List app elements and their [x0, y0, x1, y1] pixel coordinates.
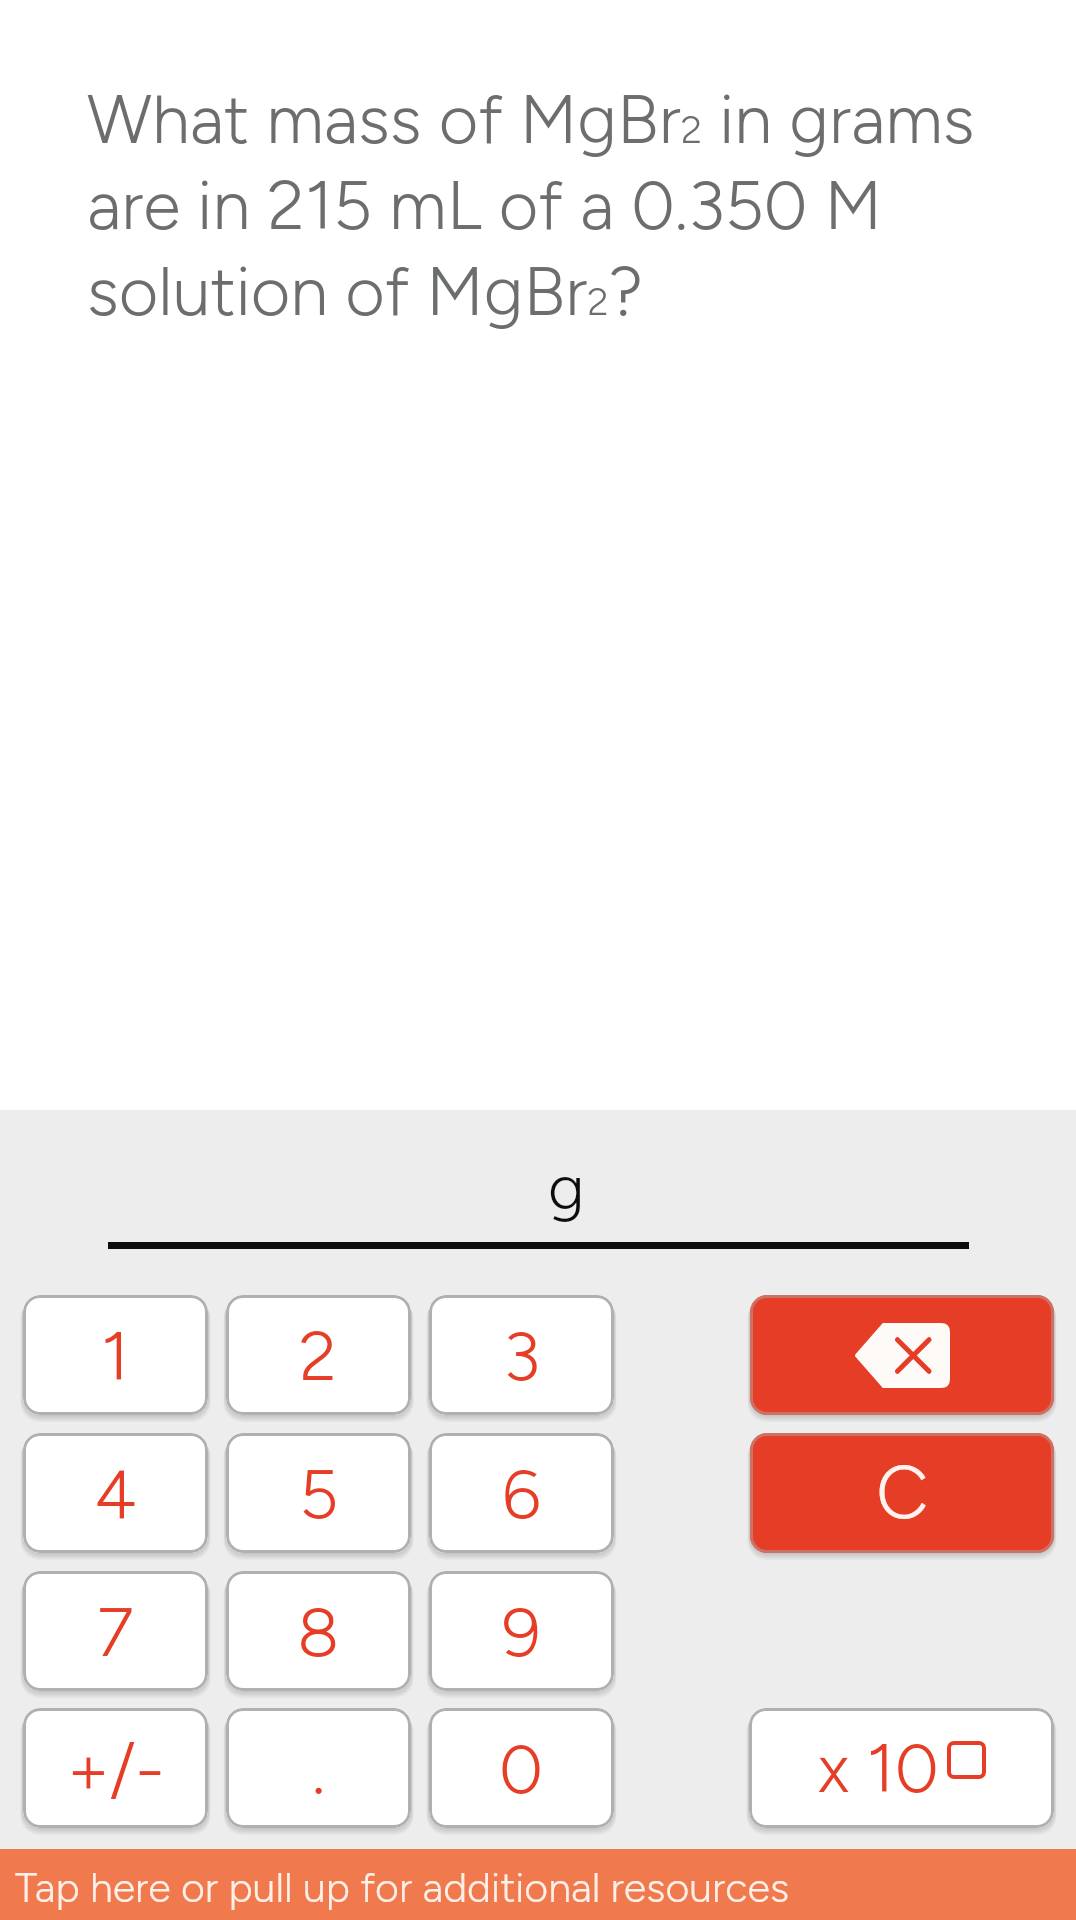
- button[interactable]: 2: [226, 1295, 411, 1415]
- staticText: Tap here or pull up for additional resou…: [15, 1863, 790, 1912]
- staticText: 8: [297, 1590, 340, 1673]
- staticText: 3: [503, 1314, 541, 1397]
- staticText: 0: [499, 1727, 544, 1810]
- button[interactable]: 0: [429, 1708, 614, 1828]
- staticText: What mass of MgBr2 in grams: [87, 78, 975, 160]
- staticText: 5: [299, 1452, 339, 1535]
- staticText: solution of MgBr2?: [87, 250, 643, 332]
- button[interactable]: 3: [429, 1295, 614, 1415]
- button[interactable]: +/-: [23, 1708, 208, 1828]
- staticText: g: [548, 1149, 585, 1225]
- button[interactable]: C: [750, 1433, 1054, 1553]
- staticText: are in 215 mL of a 0.350 M: [87, 164, 882, 246]
- staticText: +/-: [67, 1727, 165, 1810]
- button[interactable]: 4: [23, 1433, 208, 1553]
- button[interactable]: 9: [429, 1571, 614, 1691]
- button[interactable]: Backspace: [750, 1295, 1054, 1415]
- button[interactable]: .: [226, 1708, 411, 1828]
- staticText: 2: [299, 1314, 338, 1397]
- button[interactable]: 1: [23, 1295, 208, 1415]
- button[interactable]: Tap here or pull up for additional resou…: [0, 1849, 1076, 1920]
- button[interactable]: 8: [226, 1571, 411, 1691]
- button[interactable]: 5: [226, 1433, 411, 1553]
- staticText: 4: [94, 1452, 137, 1535]
- staticText: 7: [97, 1590, 134, 1673]
- staticText: 6: [502, 1452, 541, 1535]
- staticText: 9: [502, 1590, 541, 1673]
- button[interactable]: 7: [23, 1571, 208, 1691]
- staticText: C: [876, 1449, 929, 1537]
- button[interactable]: Answer input, unit grams: [108, 1149, 969, 1249]
- staticText: x 10: [818, 1726, 939, 1809]
- button[interactable]: Times ten to the power of: [749, 1708, 1054, 1828]
- staticText: .: [312, 1727, 326, 1810]
- button[interactable]: 6: [429, 1433, 614, 1553]
- staticText: 1: [101, 1314, 130, 1397]
